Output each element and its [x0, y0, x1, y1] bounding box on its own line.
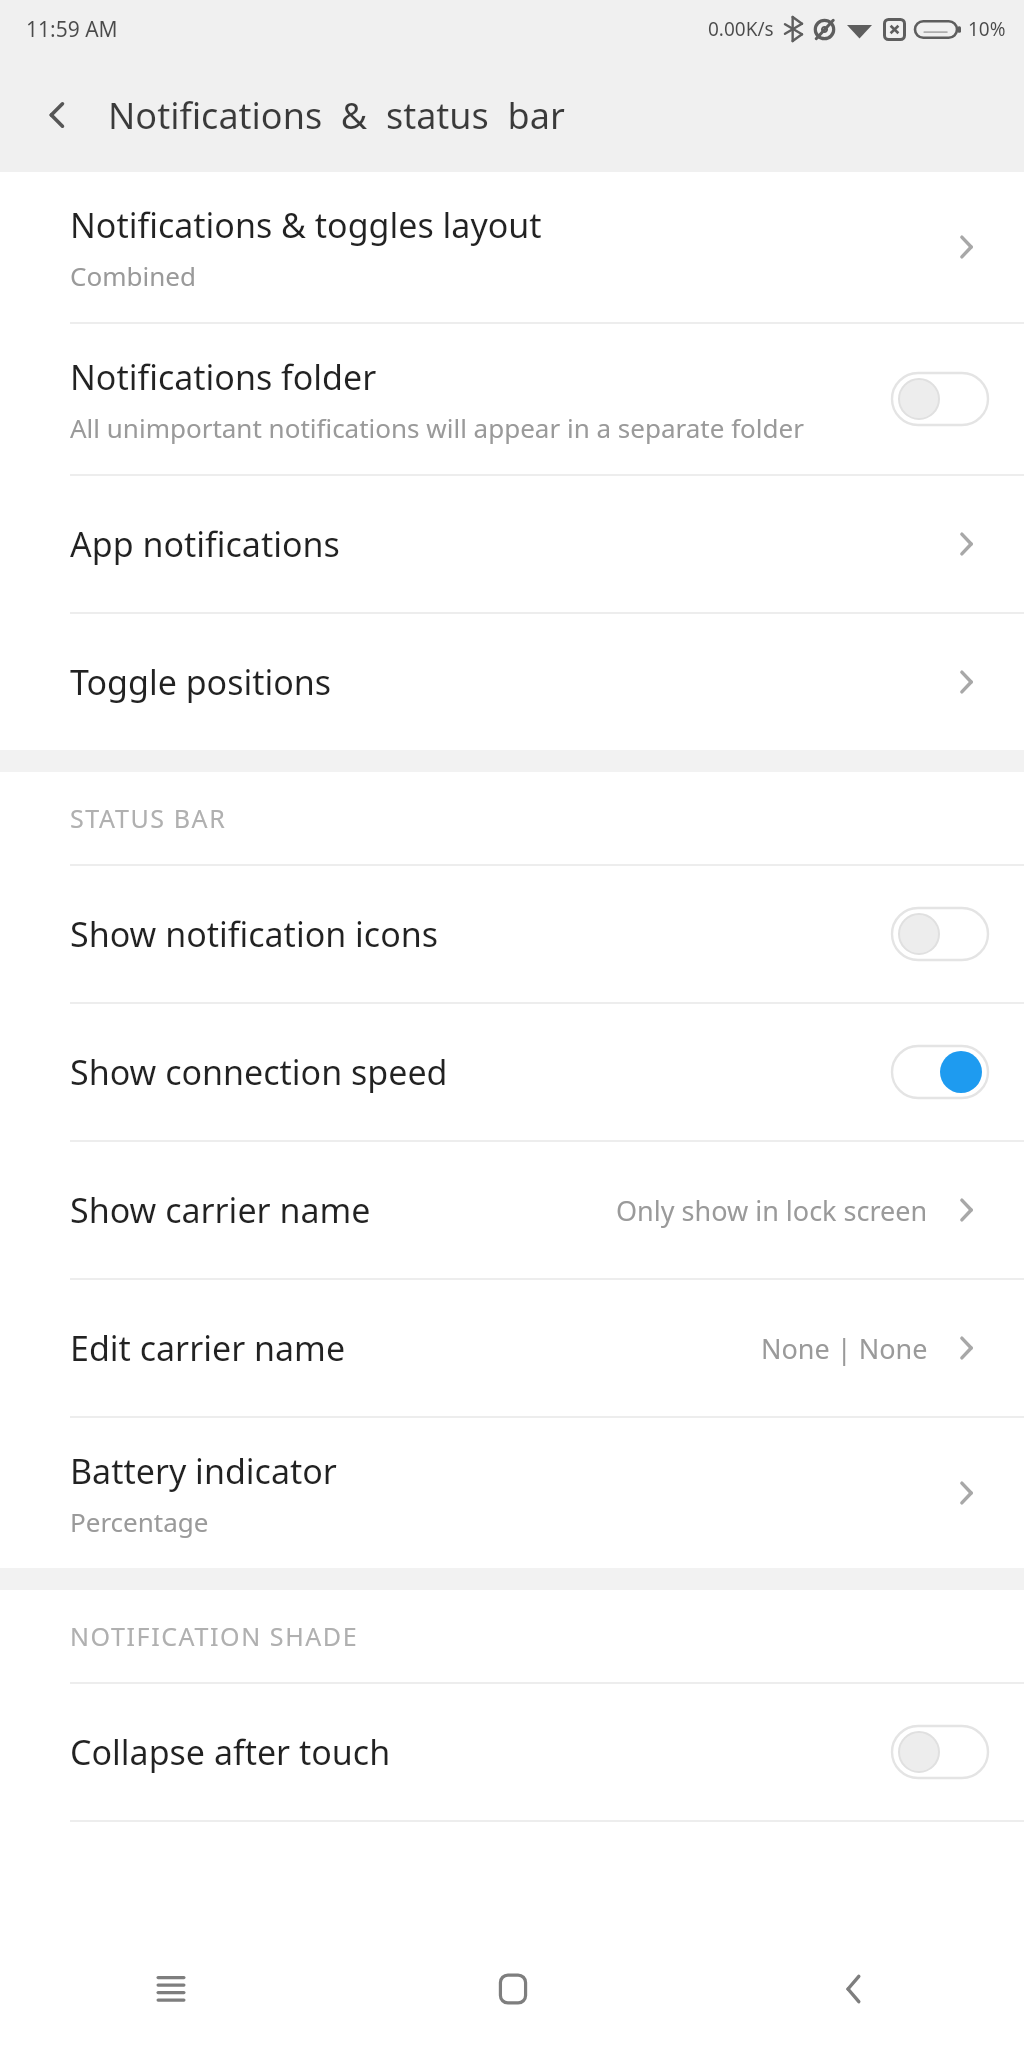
staticText: Percentage — [70, 1504, 209, 1539]
staticText: Show carrier name — [70, 1187, 371, 1233]
other: Open — [944, 660, 988, 704]
other: Open — [944, 225, 988, 269]
staticText: Notifications folder — [70, 354, 377, 400]
button[interactable]: Show carrier name — [0, 1142, 1024, 1278]
staticText: Show notification icons — [70, 911, 439, 957]
staticText: 0.00K/s — [708, 16, 774, 42]
staticText: Show connection speed — [70, 1049, 448, 1095]
staticText: All unimportant notifications will appea… — [70, 410, 804, 445]
staticText: Edit carrier name — [70, 1325, 346, 1371]
other: Open — [944, 1188, 988, 1232]
other: Open — [944, 1471, 988, 1515]
staticText: Combined — [70, 258, 196, 293]
staticText: NOTIFICATION SHADE — [70, 1619, 359, 1653]
button[interactable]: Toggle off — [892, 1726, 988, 1778]
staticText: Only show in lock screen — [616, 1192, 928, 1229]
button[interactable]: Show notification icons — [0, 866, 1024, 1002]
button[interactable]: Notifications & toggles layout — [0, 172, 1024, 322]
button[interactable]: Back — [30, 87, 86, 143]
staticText: Notifications & toggles layout — [70, 202, 542, 248]
button[interactable]: Toggle positions — [0, 614, 1024, 750]
other: Open — [944, 1326, 988, 1370]
button[interactable]: Recent apps — [0, 1930, 342, 2048]
button[interactable]: Notifications folder — [0, 324, 1024, 474]
button[interactable]: Toggle on — [892, 1046, 988, 1098]
staticText: Toggle positions — [70, 659, 332, 705]
staticText: Battery indicator — [70, 1448, 337, 1494]
button[interactable]: Battery indicator — [0, 1418, 1024, 1568]
staticText: Notifications & status bar — [108, 91, 565, 140]
staticText: None | None — [761, 1330, 928, 1367]
button[interactable]: Toggle off — [892, 373, 988, 425]
staticText: STATUS BAR — [70, 801, 227, 835]
button[interactable]: Collapse after touch — [0, 1684, 1024, 1820]
button[interactable]: App notifications — [0, 476, 1024, 612]
staticText: Collapse after touch — [70, 1729, 391, 1775]
other: Open — [944, 522, 988, 566]
staticText: 11:59 AM — [26, 15, 118, 44]
button[interactable]: Show connection speed — [0, 1004, 1024, 1140]
staticText: App notifications — [70, 521, 340, 567]
button[interactable]: Home — [342, 1930, 683, 2048]
button[interactable]: Back — [683, 1930, 1024, 2048]
staticText: 10% — [968, 16, 1006, 42]
button[interactable]: Toggle off — [892, 908, 988, 960]
button[interactable]: Edit carrier name — [0, 1280, 1024, 1416]
